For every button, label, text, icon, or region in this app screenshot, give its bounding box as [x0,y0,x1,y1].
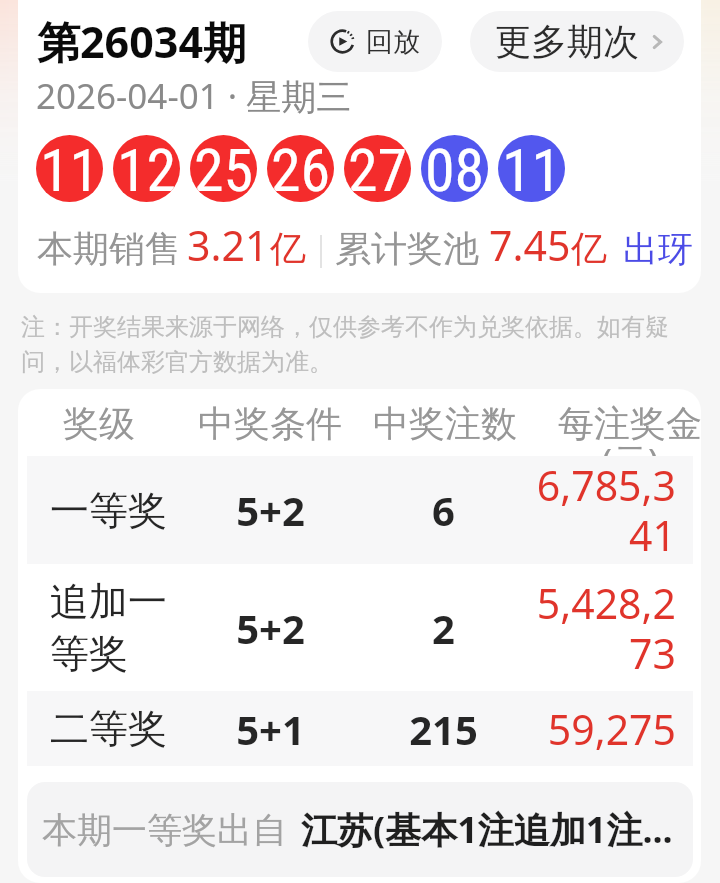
staticText: 二等奖 [50,704,167,753]
staticText: 59,275 [533,701,676,757]
staticText: 7.45 [489,217,571,273]
staticText: 6 [432,483,455,537]
staticText: 注：开奖结果来源于网络，仅供参考不作为兑奖依据。如有疑问，以福体彩官方数据为准。 [21,312,676,377]
staticText: 12 [117,135,177,202]
staticText: 奖级 [63,401,135,446]
staticText: 回放 [366,25,420,59]
staticText: 11 [40,135,100,202]
staticText: 6,785,341 [533,457,676,563]
button[interactable]: 出玡 [623,227,693,271]
staticText: 一等奖 [50,486,167,535]
staticText: 5+2 [236,483,305,537]
button[interactable]: Replay [308,11,442,72]
staticText: 11 [502,135,562,202]
staticText: 本期销售 [37,226,181,271]
staticText: 江苏(基本1注追加1注... [301,805,673,854]
button[interactable]: 更多期次 [470,11,684,72]
staticText: 累计奖池 [335,226,479,271]
staticText: 26 [271,135,331,202]
staticText: 27 [348,135,408,202]
button[interactable]: 本期一等奖出自 [27,782,693,877]
button[interactable]: 追加一等奖 [27,564,693,691]
other: Replay [330,29,355,54]
staticText: 3.21 [187,217,269,273]
staticText: 更多期次 [495,19,639,64]
staticText: 中奖注数 [373,401,517,446]
staticText: 2026-04-01 · 星期三 [36,72,352,120]
staticText: 每注奖金(元) [555,401,701,468]
staticText: 25 [194,135,254,202]
staticText: 5+2 [236,601,305,655]
button[interactable]: 二等奖 [27,691,693,766]
staticText: 5+1 [236,702,305,756]
staticText: 08 [425,135,485,202]
staticText: 第26034期 [37,12,246,71]
staticText: 追加一等奖 [50,577,172,678]
staticText: 5,428,273 [533,575,676,681]
staticText: 中奖条件 [198,401,342,446]
staticText: 本期一等奖出自 [42,808,287,852]
staticText: 2 [432,601,455,655]
staticText: 亿 [270,226,306,271]
button[interactable]: 一等奖 [27,456,693,564]
staticText: 亿 [571,226,607,271]
staticText: 215 [409,702,478,756]
